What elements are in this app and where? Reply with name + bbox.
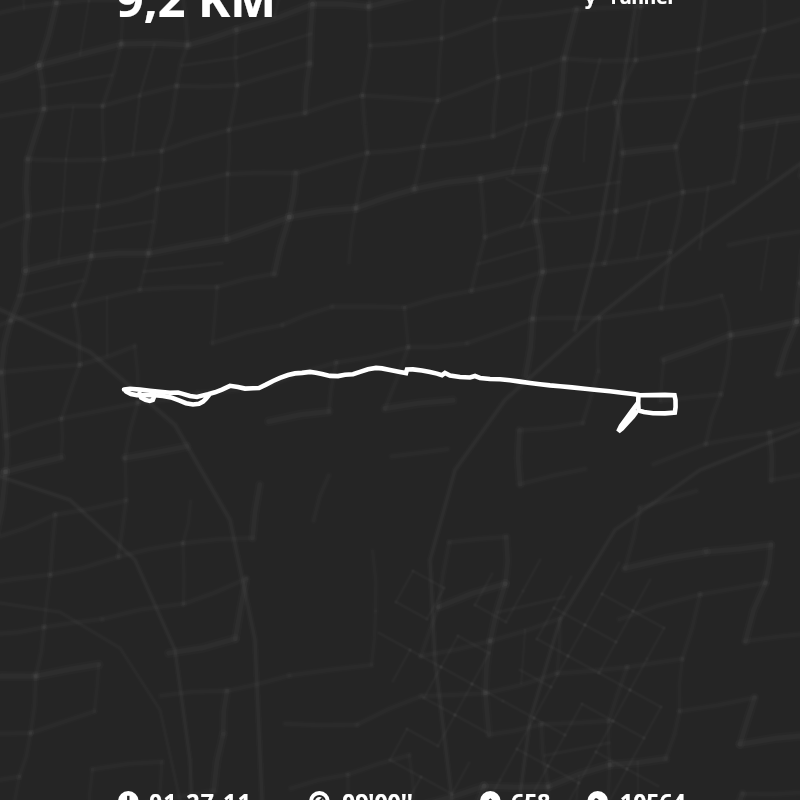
button[interactable]: y runner xyxy=(585,0,677,10)
staticText: 9,2 KM xyxy=(116,0,277,31)
button[interactable]: Activity route map xyxy=(0,0,800,800)
staticText: 09'00'' xyxy=(342,786,413,800)
button[interactable]: 9,2 KM xyxy=(116,0,277,31)
staticText: 10564 xyxy=(620,786,686,800)
button[interactable]: 10564 steps xyxy=(588,786,687,800)
button[interactable]: Average pace 9 minutes per kilometre xyxy=(309,786,414,800)
button[interactable]: 658 kilocalories xyxy=(480,786,549,800)
staticText: 01.27.11 xyxy=(149,786,253,800)
button[interactable]: Duration 01:27:11 xyxy=(118,786,248,800)
staticText: y runner xyxy=(585,0,677,10)
staticText: 658 xyxy=(511,786,551,800)
